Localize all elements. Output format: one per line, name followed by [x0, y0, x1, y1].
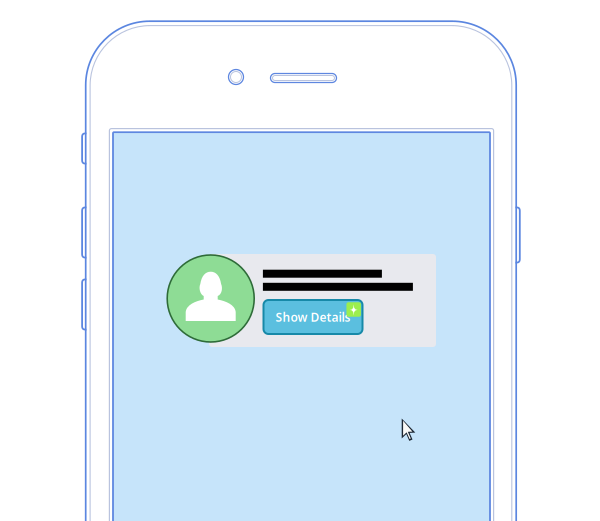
- button[interactable]: Show Details: [263, 300, 362, 334]
- staticText: Show Details: [275, 309, 350, 325]
